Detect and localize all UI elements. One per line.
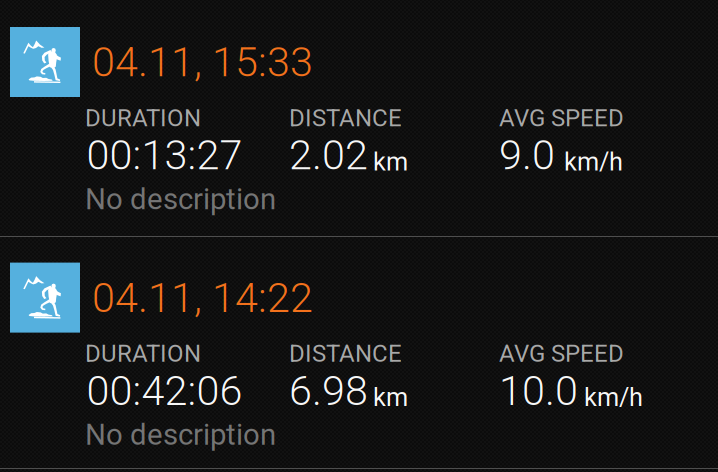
staticText: 00:13:27	[86, 131, 242, 179]
staticText: km	[373, 147, 408, 177]
staticText: 10.0	[499, 367, 578, 415]
staticText: DURATION	[85, 340, 201, 368]
staticText: km/h	[584, 383, 643, 412]
staticText: 04.11, 14:22	[92, 274, 313, 322]
staticText: km	[373, 383, 408, 412]
staticText: DISTANCE	[289, 340, 402, 368]
staticText: AVG SPEED	[499, 104, 624, 132]
staticText: 6.98	[289, 367, 368, 415]
staticText: 04.11, 15:33	[92, 38, 313, 86]
staticText: 9.0	[499, 131, 555, 179]
staticText: AVG SPEED	[499, 340, 624, 368]
staticText: km/h	[564, 147, 623, 177]
staticText: No description	[85, 182, 276, 216]
staticText: No description	[85, 418, 276, 452]
staticText: DURATION	[85, 104, 201, 132]
staticText: 00:42:06	[86, 367, 242, 415]
button[interactable]: 04.11, 15:33	[0, 0, 718, 236]
staticText: 2.02	[289, 131, 368, 179]
staticText: DISTANCE	[289, 104, 402, 132]
button[interactable]: 04.11, 14:22	[0, 236, 718, 467]
